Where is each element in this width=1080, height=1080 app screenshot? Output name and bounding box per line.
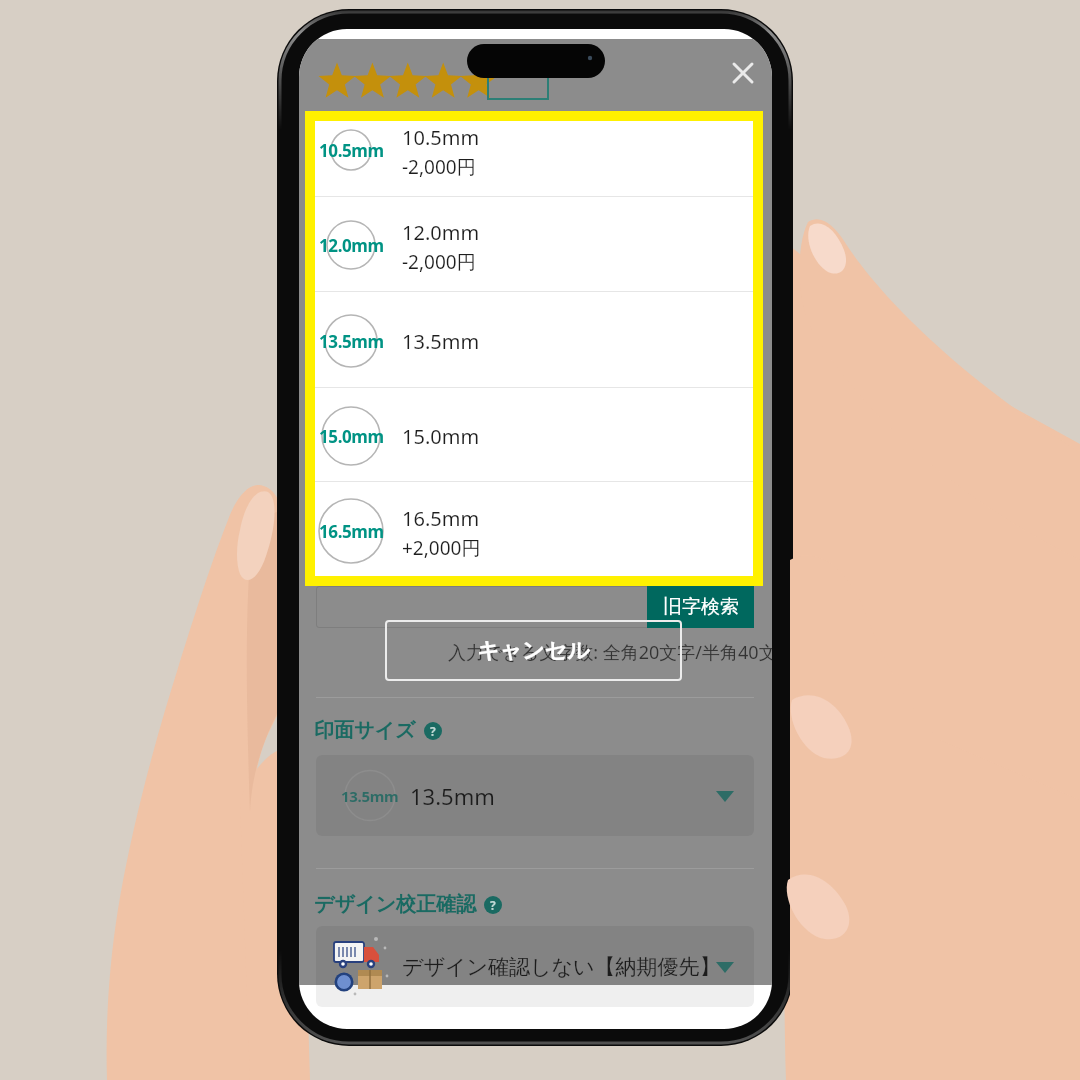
staticText: ? xyxy=(430,723,436,739)
staticText: +2,000円 xyxy=(402,535,481,561)
staticText: 16.5mm xyxy=(319,520,384,543)
button[interactable]: Close xyxy=(717,47,769,99)
button[interactable]: 旧字検索 xyxy=(647,586,754,628)
button[interactable]: 12.0mm xyxy=(315,196,753,291)
staticText: 印面サイズ xyxy=(314,718,416,743)
staticText: 13.5mm xyxy=(402,328,480,355)
staticText: -2,000円 xyxy=(402,154,476,180)
button[interactable]: 16.5mm xyxy=(315,481,753,576)
staticText: 13.5mm xyxy=(410,781,495,811)
staticText: キャンセル xyxy=(477,637,590,665)
staticText: デザイン校正確認 xyxy=(314,892,476,917)
button[interactable]: キャンセル xyxy=(385,620,682,681)
staticText: 10.5mm xyxy=(402,124,480,151)
staticText: 10.5mm xyxy=(319,139,384,162)
staticText: デザイン確認しない【納期優先】 xyxy=(402,954,721,980)
staticText: 入力できる文字数: 全角20文字/半角40文字 xyxy=(448,640,772,665)
staticText: 12.0mm xyxy=(402,219,480,246)
staticText: 旧字検索 xyxy=(663,595,739,619)
staticText: 15.0mm xyxy=(402,423,480,450)
staticText: 16.5mm xyxy=(402,505,480,532)
button[interactable]: 13.5mm xyxy=(315,291,753,387)
button[interactable]: 13.5mm xyxy=(316,755,754,836)
staticText: 13.5mm xyxy=(319,330,384,353)
button[interactable]: デザイン確認しない【納期優先】 xyxy=(316,926,754,1007)
staticText: 13.5mm xyxy=(341,786,399,806)
staticText: -2,000円 xyxy=(402,249,476,275)
staticText: 15.0mm xyxy=(319,425,384,448)
staticText: ? xyxy=(490,897,496,913)
staticText: 12.0mm xyxy=(319,234,384,257)
button[interactable]: 10.5mm xyxy=(315,121,753,196)
button[interactable]: 15.0mm xyxy=(315,387,753,481)
